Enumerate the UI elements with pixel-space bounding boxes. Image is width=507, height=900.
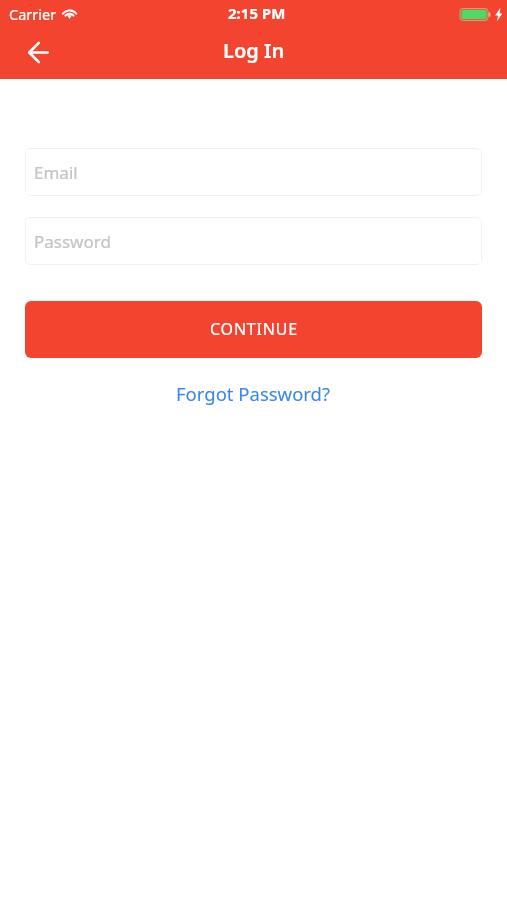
staticText: Log In — [223, 37, 285, 64]
staticText: 2:15 PM — [228, 3, 286, 23]
button[interactable]: Password — [25, 217, 482, 265]
button[interactable]: Back — [16, 30, 60, 74]
staticText: Forgot Password? — [176, 381, 331, 406]
staticText: Email — [34, 161, 78, 184]
button[interactable]: Email — [25, 148, 482, 196]
button[interactable]: CONTINUE — [25, 301, 482, 358]
staticText: Carrier — [9, 4, 57, 24]
button[interactable]: Forgot Password? — [162, 376, 345, 411]
staticText: Password — [34, 230, 111, 253]
staticText: CONTINUE — [210, 318, 298, 340]
